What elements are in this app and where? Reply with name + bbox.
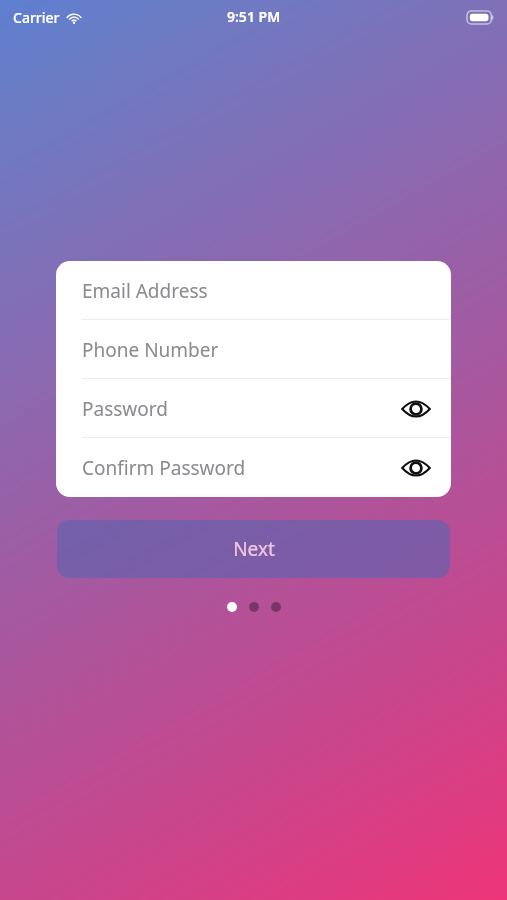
staticText: 9:51 PM [227, 7, 281, 26]
button[interactable]: Show password [399, 392, 433, 426]
staticText: Email Address [82, 278, 208, 304]
button[interactable]: Page 1, current [227, 602, 237, 612]
button[interactable]: Password [56, 379, 451, 438]
button[interactable]: Confirm Password [56, 438, 451, 497]
button[interactable]: Page [249, 602, 259, 612]
button[interactable]: Show password [399, 451, 433, 485]
staticText: Confirm Password [82, 455, 246, 481]
staticText: Phone Number [82, 337, 219, 363]
staticText: Password [82, 396, 168, 422]
button[interactable]: Page [271, 602, 281, 612]
button[interactable]: Next [57, 520, 450, 578]
staticText: Carrier [13, 8, 60, 27]
button[interactable]: Email Address [56, 261, 451, 320]
button[interactable]: Phone Number [56, 320, 451, 379]
staticText: Next [233, 536, 275, 562]
